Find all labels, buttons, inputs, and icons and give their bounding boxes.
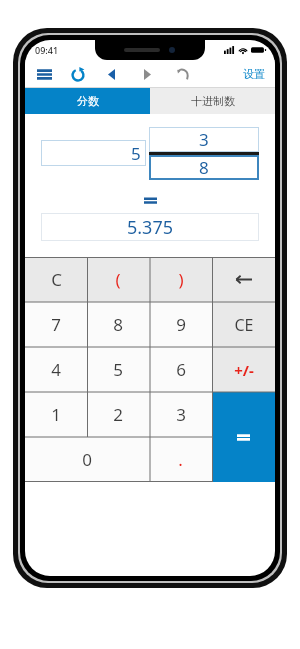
button[interactable]: 5 [41,140,146,166]
button[interactable]: 6 [149,347,212,392]
staticText: 5.375 [127,215,174,240]
button[interactable]: 5 [87,347,149,392]
staticText: C [51,268,62,291]
button[interactable]: ( [87,257,149,302]
button[interactable]: 3 [149,127,259,152]
button[interactable]: 5.375 [41,213,259,241]
staticText: 分数 [77,94,99,108]
button[interactable]: 9 [149,302,212,347]
button[interactable]: 8 [149,155,259,180]
button[interactable]: . [149,437,212,482]
staticText: 设置 [243,67,265,81]
staticText: 8 [199,156,209,179]
button[interactable]: Undo [173,63,195,85]
button[interactable]: 4 [25,347,87,392]
staticText: 1 [51,403,61,426]
staticText: CE [234,314,254,336]
button[interactable]: Next [137,64,157,84]
staticText: . [178,448,183,471]
button[interactable]: +/- [212,347,275,392]
button[interactable]: Menu [33,63,55,85]
button[interactable]: Equals [212,392,275,482]
staticText: ( [115,268,121,291]
button[interactable]: Refresh [67,63,89,85]
staticText: ) [178,268,184,291]
button[interactable]: 分数 [25,88,150,114]
staticText: 6 [176,358,186,381]
button[interactable]: Backspace [212,257,275,302]
staticText: 5 [113,358,123,381]
button[interactable]: ) [149,257,212,302]
button[interactable]: 7 [25,302,87,347]
staticText: 0 [82,448,92,471]
button[interactable]: 3 [149,392,212,437]
button[interactable]: 1 [25,392,87,437]
button[interactable]: 8 [87,302,149,347]
button[interactable]: Previous [101,64,121,84]
staticText: 5 [131,142,141,165]
staticText: 十进制数 [191,94,235,108]
button[interactable]: 十进制数 [150,88,275,114]
staticText: 9 [176,313,186,336]
staticText: 3 [176,403,186,426]
button[interactable]: 设置 [241,64,267,84]
button[interactable]: C [25,257,87,302]
button[interactable]: 0 [25,437,149,482]
staticText: 2 [113,403,123,426]
button[interactable]: CE [212,302,275,347]
staticText: 3 [199,128,209,151]
button[interactable]: 2 [87,392,149,437]
staticText: +/- [234,360,254,380]
staticText: 7 [51,313,61,336]
staticText: 09:41 [35,44,59,56]
staticText: 4 [51,358,61,381]
staticText: 8 [113,313,123,336]
